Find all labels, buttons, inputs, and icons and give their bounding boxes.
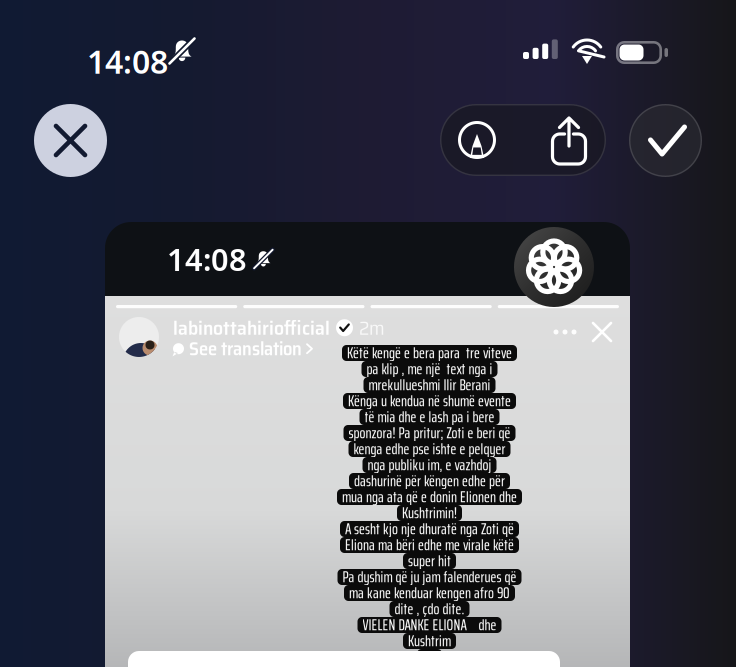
staticText: mrekullueshmi Ilir Berani [368, 373, 490, 397]
staticText: Me [422, 645, 437, 667]
staticText: sponzora! Pa pritur; Zoti e beri që [348, 421, 510, 445]
staticText: 2m [359, 312, 385, 343]
button[interactable]: See translation [173, 334, 312, 363]
button[interactable]: Share [538, 104, 600, 176]
staticText: pa klip , me një text nga i [366, 357, 492, 381]
staticText: dashurinë për këngen edhe për [354, 469, 505, 493]
staticText: Këtë kengë e bera para tre viteve [347, 341, 512, 365]
staticText: See translation [189, 334, 302, 363]
staticText: të mia dhe e lash pa i bere [364, 405, 494, 429]
button[interactable]: Close [34, 104, 107, 177]
button[interactable]: Profile picture [119, 317, 159, 357]
staticText: kenga edhe pse ishte e pelqyer [353, 437, 505, 461]
button[interactable]: Apple Intelligence [514, 227, 594, 307]
staticText: labinottahiriofficial [173, 312, 330, 343]
staticText: Pa dyshim që ju jam falenderues që [342, 565, 516, 589]
button[interactable]: Close story [587, 319, 617, 345]
staticText: super hit [408, 549, 451, 573]
staticText: Kushtrimin! [402, 501, 457, 525]
button[interactable]: More options [551, 320, 579, 344]
staticText: 14:08 [167, 239, 247, 279]
staticText: ma kane kenduar kengen afro 90 [349, 581, 510, 605]
button[interactable]: Done [629, 104, 702, 177]
staticText: A sesht kjo nje dhuratë nga Zoti që [345, 517, 514, 541]
staticText: VIELEN DANKE ELIONA dhe [362, 613, 496, 637]
staticText: dite , çdo dite. [394, 597, 464, 621]
staticText: mua nga ata që e donin Elionen dhe [342, 485, 517, 509]
staticText: 14:08 [87, 40, 168, 82]
staticText: nga publiku im, e vazhdoj [367, 453, 491, 477]
button[interactable]: labinottahiriofficial [173, 312, 385, 343]
staticText: Kënga u kendua në shumë evente [348, 389, 511, 413]
staticText: Eliona ma bëri edhe me virale këtë [345, 533, 514, 557]
staticText: Kushtrim [408, 629, 451, 653]
button[interactable]: Markup [446, 104, 508, 176]
